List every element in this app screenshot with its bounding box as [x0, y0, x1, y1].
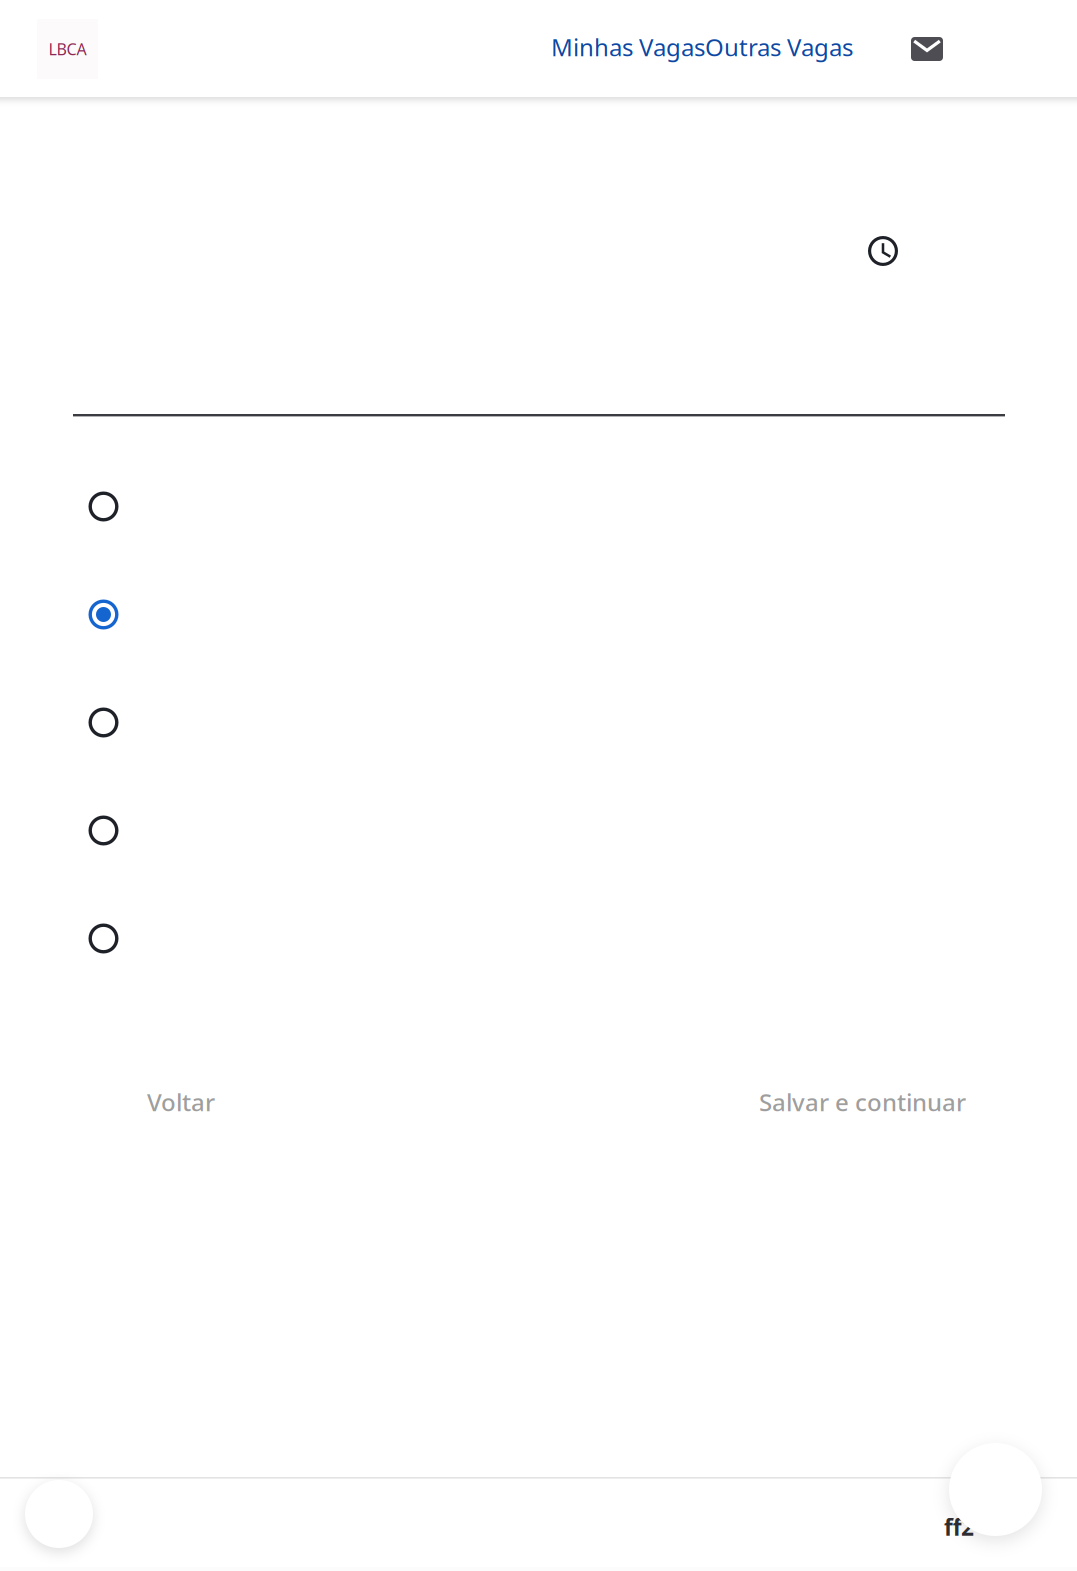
staticText: ff2	[944, 1512, 974, 1542]
button[interactable]: Opção 5	[73, 900, 1005, 977]
button[interactable]: Mensagens	[899, 21, 955, 77]
staticText: Outras Vagas	[705, 31, 853, 63]
button[interactable]: Ajuda	[25, 1480, 93, 1548]
button[interactable]: Opção 2, selecionada	[73, 576, 1005, 653]
staticText: Voltar	[147, 1086, 215, 1118]
button[interactable]: Assistente	[949, 1443, 1042, 1536]
staticText: Salvar e continuar	[759, 1086, 966, 1118]
button[interactable]: Opção 1	[73, 468, 1005, 545]
button[interactable]: Minhas Vagas	[551, 25, 705, 69]
button[interactable]: LBCA	[37, 19, 98, 79]
button[interactable]: Opção 3	[73, 684, 1005, 761]
button[interactable]: Voltar	[147, 1079, 243, 1125]
staticText: Minhas Vagas	[551, 31, 705, 63]
staticText: LBCA	[48, 38, 86, 60]
button[interactable]: Salvar e continuar	[759, 1079, 995, 1125]
button[interactable]: Histórico	[857, 225, 909, 277]
button[interactable]: Outras Vagas	[705, 25, 853, 69]
button[interactable]: Opção 4	[73, 792, 1005, 869]
